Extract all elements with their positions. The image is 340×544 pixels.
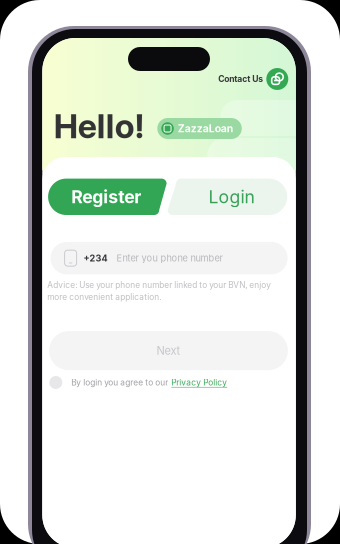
button[interactable]: Next (49, 331, 288, 370)
staticText: ZazzaLoan (178, 122, 233, 135)
staticText: more convenient application. (47, 292, 161, 302)
button[interactable]: Register (48, 179, 167, 215)
staticText: +234 (84, 253, 108, 264)
staticText: Enter you phone number (117, 253, 223, 264)
button[interactable]: Contact Us (218, 68, 288, 90)
button[interactable]: Login (168, 179, 287, 215)
staticText: Register (71, 186, 141, 207)
staticText: By login you agree to our (71, 377, 168, 387)
button[interactable]: Privacy Policy (171, 377, 227, 387)
staticText: Advice: Use your phone number linked to … (47, 280, 271, 290)
staticText: Contact Us (218, 74, 263, 84)
staticText: Privacy Policy (171, 377, 227, 387)
staticText: Login (208, 186, 254, 207)
staticText: Next (156, 344, 180, 357)
staticText: Hello! (54, 106, 144, 146)
